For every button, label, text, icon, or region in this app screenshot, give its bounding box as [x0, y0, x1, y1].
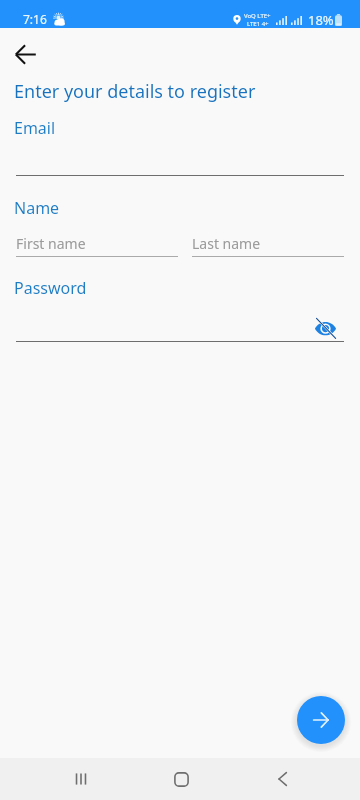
- button[interactable]: Home: [157, 758, 205, 800]
- staticText: First name: [16, 234, 86, 253]
- staticText: 7:16: [23, 11, 47, 27]
- staticText: LTE1 4+: [247, 20, 269, 28]
- staticText: Name: [14, 197, 60, 219]
- button[interactable]: Back: [258, 758, 306, 800]
- staticText: Last name: [192, 234, 261, 253]
- button[interactable]: Next: [297, 696, 345, 744]
- staticText: Password: [14, 277, 87, 299]
- staticText: VoQ LTE+: [244, 12, 271, 20]
- button[interactable]: Toggle password visibility: [311, 313, 339, 341]
- staticText: Email: [14, 117, 56, 139]
- staticText: 18%: [308, 11, 334, 29]
- button[interactable]: Recents: [57, 758, 105, 800]
- staticText: Enter your details to register: [14, 79, 256, 104]
- button[interactable]: Back: [5, 34, 45, 74]
